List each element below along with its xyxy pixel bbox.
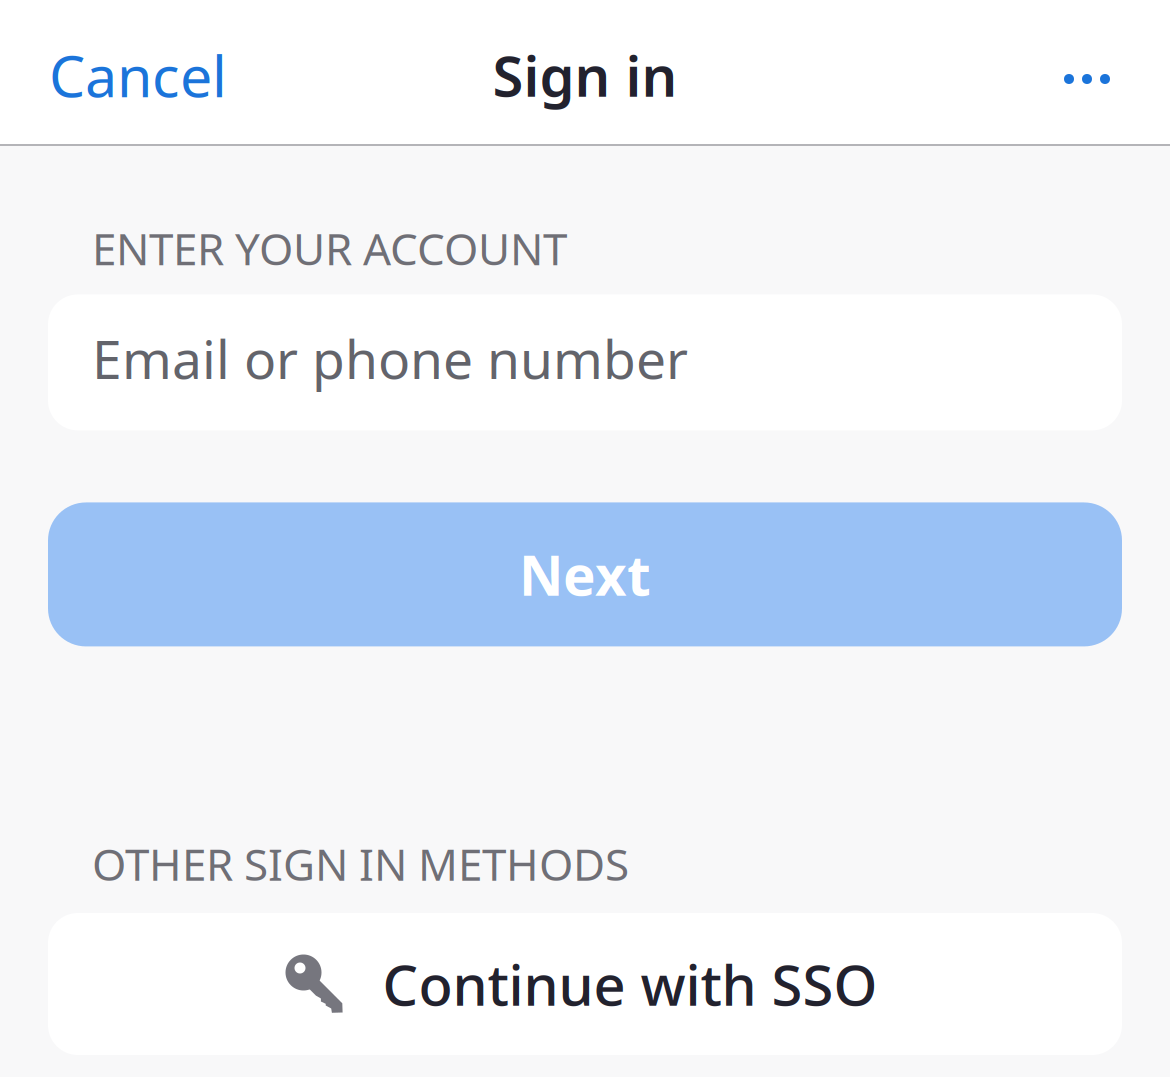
- staticText: ENTER YOUR ACCOUNT: [92, 219, 567, 277]
- staticText: Cancel: [49, 37, 227, 113]
- staticText: Email or phone number: [92, 323, 688, 394]
- staticText: Continue with SSO: [382, 947, 877, 1021]
- staticText: OTHER SIGN IN METHODS: [92, 835, 629, 893]
- staticText: Next: [519, 538, 651, 611]
- button[interactable]: Email or phone number: [48, 294, 1122, 430]
- button[interactable]: Cancel: [0, 0, 257, 144]
- button[interactable]: Next: [48, 502, 1122, 646]
- staticText: Sign in: [492, 38, 677, 112]
- button[interactable]: More options: [1020, 0, 1170, 144]
- button[interactable]: Continue with SSO: [48, 913, 1122, 1055]
